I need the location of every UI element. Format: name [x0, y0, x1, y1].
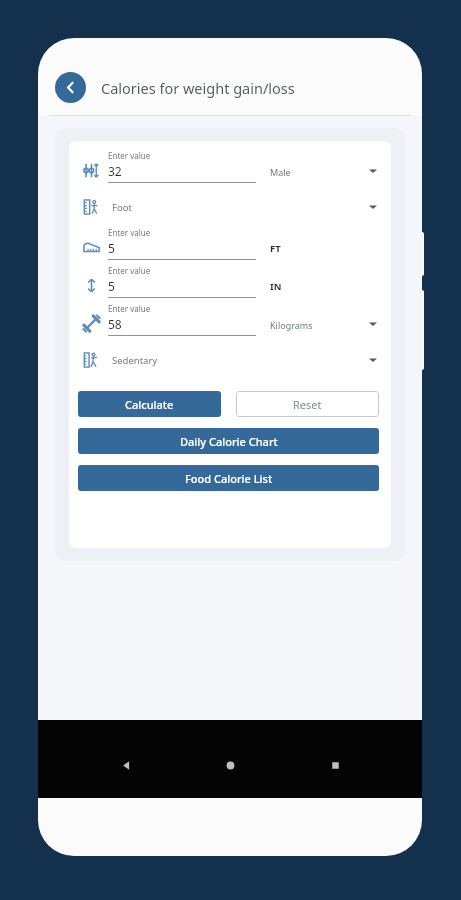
staticText: Reset: [293, 397, 322, 412]
staticText: 5: [108, 240, 115, 256]
staticText: Calories for weight gain/loss: [101, 78, 295, 98]
staticText: Foot: [112, 201, 132, 214]
other: Select Male: [367, 165, 379, 177]
staticText: Enter value: [108, 265, 151, 276]
staticText: FT: [270, 242, 281, 255]
button[interactable]: Foot: [78, 194, 379, 220]
staticText: Food Calorie List: [185, 471, 273, 486]
staticText: Kilograms: [270, 319, 313, 331]
button[interactable]: Back: [109, 748, 143, 782]
staticText: Sedentary: [112, 354, 158, 367]
button[interactable]: Calculate: [78, 391, 221, 417]
staticText: Daily Calorie Chart: [180, 434, 278, 449]
button[interactable]: Recents: [318, 748, 352, 782]
staticText: 5: [108, 278, 115, 294]
staticText: Enter value: [108, 303, 151, 314]
button[interactable]: Back: [55, 72, 86, 103]
staticText: Male: [270, 166, 291, 178]
staticText: Calculate: [125, 397, 174, 412]
button[interactable]: Daily Calorie Chart: [78, 428, 379, 454]
staticText: Enter value: [108, 150, 151, 161]
staticText: IN: [270, 280, 282, 293]
button[interactable]: Reset: [236, 391, 379, 417]
button[interactable]: Enter value: [78, 303, 379, 336]
button[interactable]: Home: [213, 748, 247, 782]
staticText: 32: [108, 163, 122, 179]
button[interactable]: Enter value: [78, 227, 379, 260]
staticText: Enter value: [108, 227, 151, 238]
button[interactable]: Enter value: [78, 265, 379, 298]
staticText: 58: [108, 316, 122, 332]
button[interactable]: Sedentary: [78, 347, 379, 373]
button[interactable]: Food Calorie List: [78, 465, 379, 491]
other: Select Kilograms: [367, 318, 379, 330]
button[interactable]: Enter value: [78, 150, 379, 183]
